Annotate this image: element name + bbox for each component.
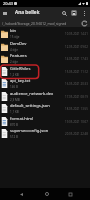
button[interactable]: Features [0,52,90,65]
button[interactable]: Open navigation drawer [0,8,9,18]
staticText: /_/sdcard/Storage_20.9.6012_mod_signed [2,21,67,25]
staticText: supersecconfig.json [10,128,49,134]
staticText: 512 B [10,135,18,139]
staticText: 870 B [10,123,18,127]
button[interactable]: Back [16,189,26,199]
staticText: 10.05.2021 14:21 [65,32,88,36]
staticText: 12.05.2021 09:02 [65,45,88,49]
staticText: 15.05.2021 11:12 [65,70,88,74]
button[interactable]: supersecconfig.json [0,127,90,140]
button[interactable]: format.html [0,115,90,128]
staticText: 146 B [10,85,18,89]
button[interactable]: audience_network.dex [0,90,90,103]
button[interactable]: Search [59,8,69,18]
staticText: DemDev [10,41,27,47]
staticText: 20.05.2021 22:48 [65,132,88,136]
button[interactable]: Refresh [80,19,88,27]
staticText: GitleRhiles [10,66,31,72]
button[interactable]: default_settings.json [0,102,90,115]
staticText: 1,2 KB [10,73,19,77]
staticText: 20:43 [3,1,13,6]
staticText: Features [10,53,27,59]
staticText: 14.05.2021 17:43 [65,57,88,61]
staticText: 19.05.2021 10:07 [65,120,88,124]
staticText: 15 öğe [10,35,20,39]
staticText: 17.05.2021 08:19 [65,95,88,99]
button[interactable]: Change view [69,8,79,18]
staticText: 1,1 KB [10,110,19,114]
staticText: default_settings.json [10,103,50,109]
staticText: 16.05.2021 20:33 [65,82,88,86]
staticText: 2 öğe [10,60,18,64]
staticText: bin [10,28,17,34]
button[interactable]: Home [42,189,52,199]
staticText: 2,3 MB [10,98,20,102]
staticText: Ana bellek [15,9,40,16]
button[interactable]: DemDev [0,40,90,53]
staticText: 18.05.2021 13:55 [65,107,88,111]
staticText: format.html [10,116,34,122]
staticText: audience_network.dex [10,91,54,97]
button[interactable]: bin [0,27,90,40]
button[interactable]: Recent apps [65,189,75,199]
button[interactable]: api_key.txt [0,77,90,90]
button[interactable]: GitleRhiles [0,65,90,78]
button[interactable]: More options [79,8,89,18]
staticText: 4 öğe [10,48,18,52]
staticText: api_key.txt [10,78,31,84]
